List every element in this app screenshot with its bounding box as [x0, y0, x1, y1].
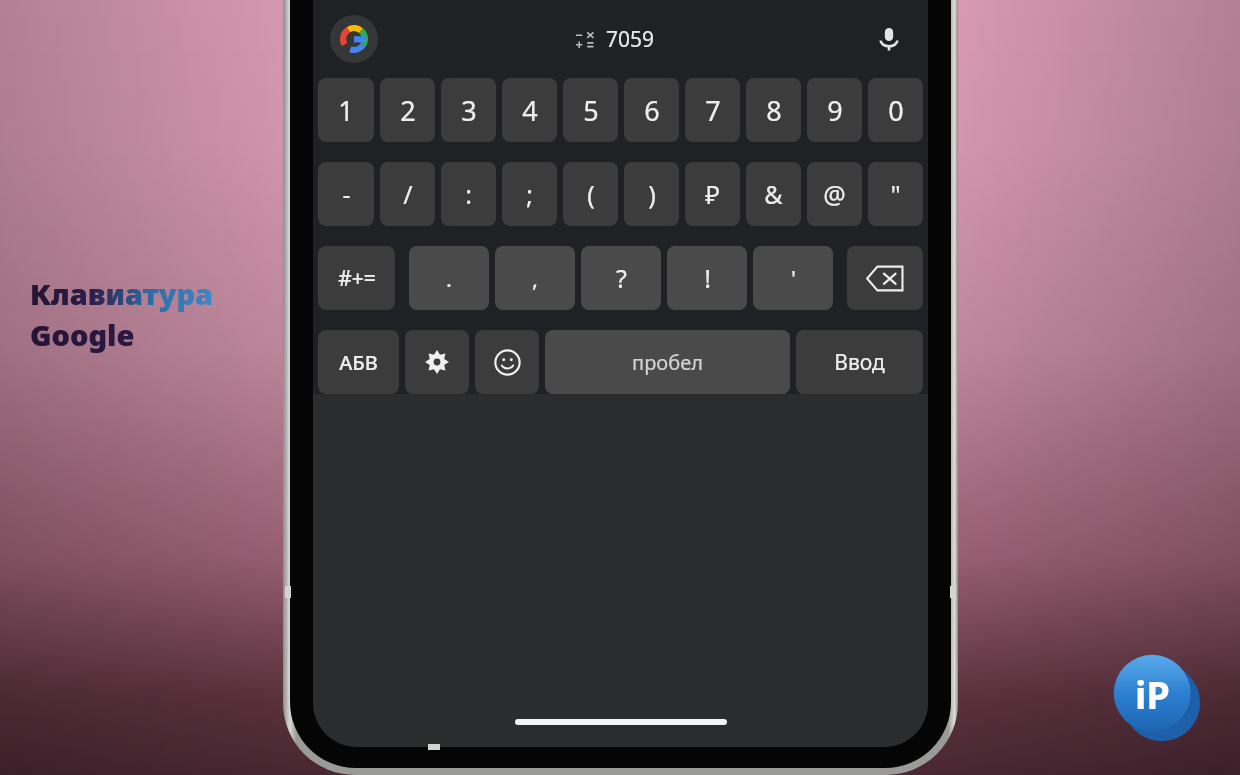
button[interactable]: 0 [868, 78, 923, 142]
button[interactable]: ! [667, 246, 747, 310]
staticText: ) [648, 177, 656, 211]
button[interactable]: пробел [545, 330, 790, 394]
staticText: " [890, 177, 901, 211]
button[interactable]: ( [563, 162, 618, 226]
button[interactable]: Emoji [475, 330, 539, 394]
staticText: - [342, 177, 351, 211]
button[interactable]: . [409, 246, 489, 310]
staticText: @ [823, 177, 846, 211]
staticText: / [403, 177, 413, 211]
staticText: : [465, 177, 472, 211]
button[interactable]: & [746, 162, 801, 226]
staticText: 8 [766, 92, 782, 129]
button[interactable]: ₽ [685, 162, 740, 226]
button[interactable]: 3 [441, 78, 496, 142]
staticText: 7059 [606, 25, 655, 54]
staticText: ! [704, 261, 711, 295]
staticText: пробел [632, 349, 703, 376]
button[interactable]: Add [813, 68, 879, 134]
staticText: 543*13 [340, 77, 429, 112]
button[interactable]: 9 [807, 78, 862, 142]
staticText: Google [30, 315, 135, 354]
button[interactable]: Google [330, 15, 378, 63]
button[interactable]: , [495, 246, 575, 310]
button[interactable]: #+= [318, 246, 395, 310]
staticText: ( [587, 177, 595, 211]
staticText: 6 [644, 92, 660, 129]
button[interactable]: ' [753, 246, 833, 310]
staticText: Ввод [834, 348, 885, 377]
staticText: 5 [583, 92, 599, 129]
staticText: iP [1135, 668, 1170, 720]
staticText: . [446, 263, 452, 293]
staticText: 7 [705, 92, 721, 129]
staticText: 3 [461, 92, 477, 129]
staticText: #+= [338, 264, 376, 293]
staticText: & [764, 177, 783, 211]
button[interactable]: 1 [318, 78, 374, 142]
staticText: 9 [827, 92, 843, 129]
staticText: Клавиатура [30, 274, 213, 313]
button[interactable]: 2 [380, 78, 435, 142]
button[interactable]: @ [807, 162, 862, 226]
button[interactable]: - [318, 162, 374, 226]
button[interactable]: ; [502, 162, 557, 226]
staticText: АБВ [339, 349, 378, 376]
button[interactable]: 6 [624, 78, 679, 142]
staticText: ; [526, 177, 533, 211]
staticText: ? [616, 261, 627, 295]
button[interactable]: 7 [685, 78, 740, 142]
button[interactable]: ? [581, 246, 661, 310]
staticText: 2 [400, 92, 416, 129]
staticText: , [532, 263, 538, 293]
button[interactable]: Ввод [796, 330, 923, 394]
button[interactable]: 4 [502, 78, 557, 142]
button[interactable]: 7059 [575, 25, 655, 54]
button[interactable]: Backspace [847, 246, 923, 310]
button[interactable]: Settings [405, 330, 469, 394]
button[interactable]: АБВ [318, 330, 399, 394]
button[interactable]: " [868, 162, 923, 226]
button[interactable]: Voice input [868, 18, 910, 60]
staticText: 1 [338, 92, 354, 129]
button[interactable]: 8 [746, 78, 801, 142]
button[interactable]: ) [624, 162, 679, 226]
button[interactable]: : [441, 162, 496, 226]
staticText: 4 [522, 92, 538, 129]
button[interactable]: 5 [563, 78, 618, 142]
button[interactable]: / [380, 162, 435, 226]
staticText: 0 [888, 92, 904, 129]
staticText: ₽ [705, 177, 720, 211]
staticText: ' [791, 263, 796, 293]
